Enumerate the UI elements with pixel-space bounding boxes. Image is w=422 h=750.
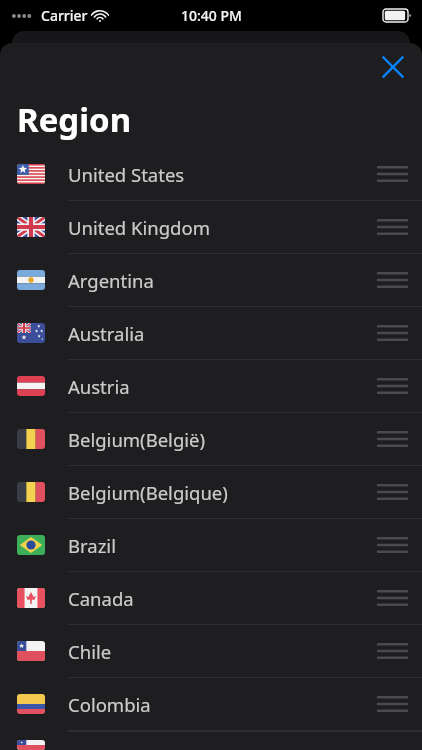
staticText: Region: [17, 97, 132, 142]
button[interactable]: Colombia: [0, 678, 422, 731]
staticText: United States: [68, 162, 185, 187]
button[interactable]: Reorder Belgium(Belgique): [370, 472, 414, 512]
staticText: Belgium(Belgique): [68, 480, 228, 505]
staticText: United Kingdom: [68, 215, 210, 240]
staticText: Argentina: [68, 268, 154, 293]
button[interactable]: Belgium(België): [0, 413, 422, 466]
button[interactable]: Chile: [0, 625, 422, 678]
button[interactable]: Reorder Argentina: [370, 260, 414, 300]
staticText: Canada: [68, 586, 134, 611]
button[interactable]: Canada: [0, 572, 422, 625]
button[interactable]: Reorder United States: [370, 154, 414, 194]
staticText: Belgium(België): [68, 427, 206, 452]
button[interactable]: Reorder Canada: [370, 578, 414, 618]
button[interactable]: Reorder Australia: [370, 313, 414, 353]
staticText: Carrier: [41, 6, 88, 25]
button[interactable]: Reorder Chile: [370, 631, 414, 671]
button[interactable]: United Kingdom: [0, 201, 422, 254]
button[interactable]: Argentina: [0, 254, 422, 307]
button[interactable]: Reorder United Kingdom: [370, 207, 414, 247]
button[interactable]: Reorder Austria: [370, 366, 414, 406]
staticText: Colombia: [68, 692, 151, 717]
staticText: 10:40 PM: [181, 6, 242, 25]
button[interactable]: Reorder Colombia: [370, 684, 414, 724]
button[interactable]: Austria: [0, 360, 422, 413]
button[interactable]: Reorder Brazil: [370, 525, 414, 565]
button[interactable]: United States: [0, 148, 422, 201]
staticText: Brazil: [68, 533, 116, 558]
button[interactable]: Reorder Belgium(België): [370, 419, 414, 459]
button[interactable]: Australia: [0, 307, 422, 360]
staticText: Australia: [68, 321, 145, 346]
staticText: Chile: [68, 639, 112, 664]
button[interactable]: Belgium(Belgique): [0, 466, 422, 519]
button[interactable]: Brazil: [0, 519, 422, 572]
button[interactable]: Close: [374, 48, 412, 86]
staticText: Austria: [68, 374, 130, 399]
